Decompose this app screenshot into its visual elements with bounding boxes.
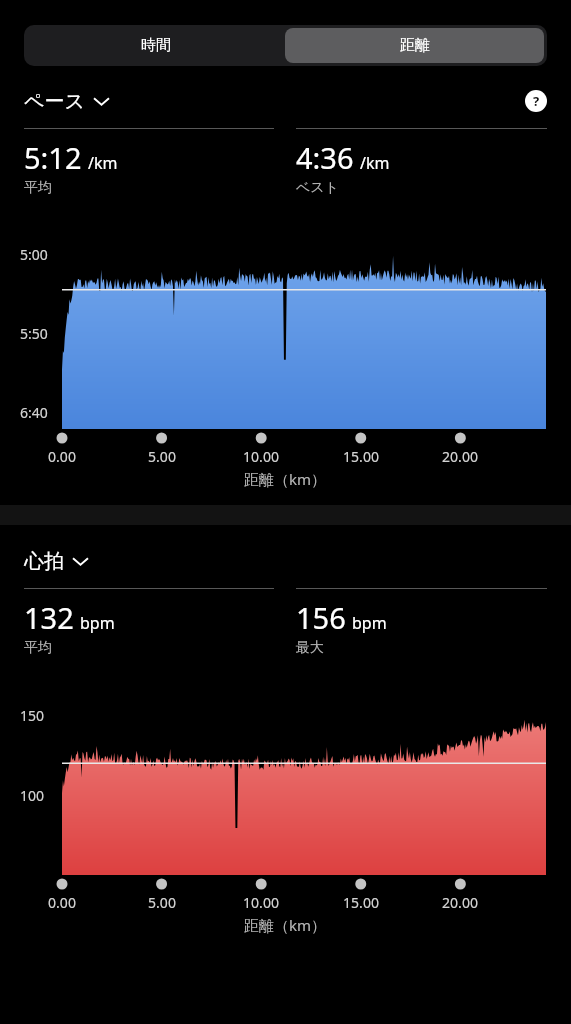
button[interactable]: 132 — [24, 588, 274, 657]
staticText: 15.00 — [343, 893, 379, 912]
staticText: 心拍 — [24, 549, 64, 574]
staticText: 150 — [20, 706, 45, 725]
staticText: 5:50 — [20, 324, 48, 343]
staticText: 0.00 — [48, 447, 76, 466]
staticText: 距離（km） — [244, 915, 327, 935]
button[interactable]: 4:36 — [296, 128, 547, 197]
staticText: 平均 — [24, 639, 52, 657]
staticText: 10.00 — [243, 447, 279, 466]
staticText: 4:36 — [296, 138, 354, 177]
staticText: 5:00 — [20, 245, 48, 264]
staticText: 100 — [20, 786, 45, 805]
staticText: 0.00 — [48, 893, 76, 912]
staticText: ペース — [24, 89, 85, 114]
staticText: /km — [360, 152, 390, 174]
staticText: 5:12 — [24, 138, 82, 177]
button[interactable]: 心拍 — [24, 549, 88, 574]
staticText: ? — [533, 92, 540, 110]
staticText: 10.00 — [243, 893, 279, 912]
staticText: 最大 — [296, 639, 324, 657]
button[interactable]: Help — [524, 89, 548, 113]
staticText: 距離（km） — [244, 469, 327, 489]
staticText: 20.00 — [442, 893, 478, 912]
staticText: 時間 — [141, 36, 171, 55]
button[interactable]: 5:12 — [24, 128, 274, 197]
button[interactable]: 距離 — [285, 28, 544, 63]
button[interactable]: ペース — [24, 89, 109, 114]
staticText: 5.00 — [148, 893, 176, 912]
staticText: ベスト — [296, 179, 339, 197]
staticText: /km — [88, 152, 118, 174]
button[interactable]: 156 — [296, 588, 547, 657]
staticText: bpm — [352, 612, 387, 634]
staticText: 5.00 — [148, 447, 176, 466]
button[interactable]: 時間 — [27, 28, 285, 63]
staticText: 132 — [24, 598, 74, 637]
staticText: 6:40 — [20, 403, 48, 422]
staticText: 距離 — [400, 36, 430, 55]
staticText: 15.00 — [343, 447, 379, 466]
staticText: bpm — [80, 612, 115, 634]
staticText: 156 — [296, 598, 346, 637]
staticText: 20.00 — [442, 447, 478, 466]
staticText: 平均 — [24, 179, 52, 197]
